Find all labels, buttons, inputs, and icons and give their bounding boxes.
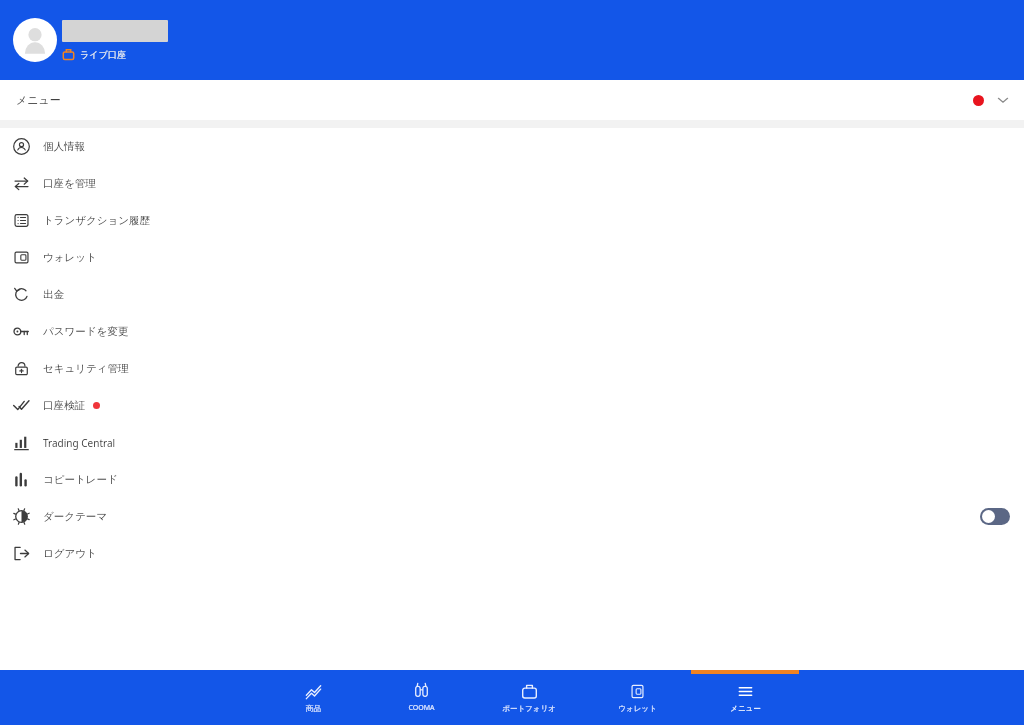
- button[interactable]: 商品: [260, 670, 367, 725]
- button[interactable]: ウォレット: [0, 239, 1024, 276]
- button[interactable]: メニュー: [691, 670, 799, 725]
- button[interactable]: Trading Central: [0, 424, 1024, 461]
- button[interactable]: Profile avatar: [13, 18, 57, 62]
- staticText: ウォレット: [618, 704, 657, 713]
- button[interactable]: ログアウト: [0, 535, 1024, 572]
- staticText: ポートフォリオ: [502, 704, 556, 713]
- staticText: ウォレット: [43, 251, 97, 264]
- button[interactable]: 出金: [0, 276, 1024, 313]
- staticText: 口座検証: [43, 399, 85, 412]
- staticText: コピートレード: [43, 473, 118, 486]
- button[interactable]: 個人情報: [0, 128, 1024, 165]
- staticText: 口座を管理: [43, 177, 96, 190]
- button[interactable]: 口座検証: [0, 387, 1024, 424]
- button[interactable]: トランザクション履歴: [0, 202, 1024, 239]
- staticText: パスワードを変更: [43, 325, 129, 338]
- button[interactable]: パスワードを変更: [0, 313, 1024, 350]
- button[interactable]: ダークテーマ: [0, 498, 1024, 535]
- staticText: 出金: [43, 288, 64, 301]
- button[interactable]: ポートフォリオ: [475, 670, 583, 725]
- button[interactable]: コピートレード: [0, 461, 1024, 498]
- staticText: Trading Central: [43, 436, 116, 450]
- staticText: トランザクション履歴: [43, 214, 150, 227]
- staticText: ログアウト: [43, 547, 97, 560]
- button[interactable]: 口座を管理: [0, 165, 1024, 202]
- button[interactable]: ウォレット: [583, 670, 691, 725]
- staticText: 個人情報: [43, 140, 85, 153]
- staticText: COOMA: [408, 703, 435, 713]
- staticText: ライブ口座: [80, 49, 126, 60]
- staticText: メニュー: [730, 704, 761, 713]
- staticText: セキュリティ管理: [43, 362, 129, 375]
- button[interactable]: Toggle dark theme: [980, 508, 1010, 525]
- button[interactable]: セキュリティ管理: [0, 350, 1024, 387]
- staticText: メニュー: [16, 93, 61, 107]
- staticText: 商品: [306, 704, 321, 713]
- staticText: ダークテーマ: [43, 510, 107, 523]
- button[interactable]: COOMA: [367, 670, 475, 725]
- button[interactable]: Change language: [969, 90, 1013, 110]
